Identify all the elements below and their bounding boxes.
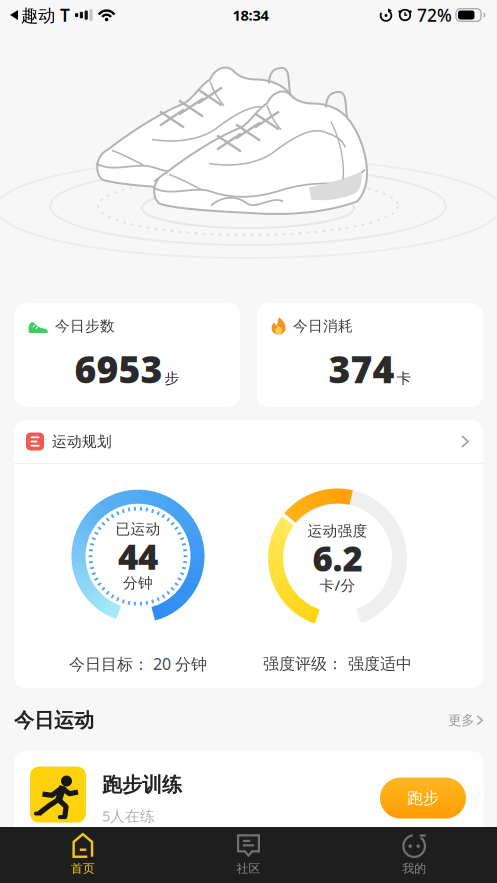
staticText: 首页 bbox=[71, 861, 95, 876]
staticText: 更多 bbox=[448, 712, 474, 728]
staticText: 卡 bbox=[396, 369, 411, 387]
staticText: 分钟 bbox=[123, 574, 153, 592]
button[interactable]: 更多 bbox=[448, 712, 483, 728]
staticText: 趣动 T bbox=[21, 3, 70, 26]
staticText: 今日目标： 20 分钟 bbox=[69, 653, 207, 674]
staticText: 44 bbox=[118, 533, 158, 579]
button[interactable]: 跑步训练 bbox=[14, 751, 483, 855]
staticText: 5人在练 bbox=[102, 806, 155, 826]
staticText: 今日运动 bbox=[14, 708, 94, 733]
staticText: 卡/分 bbox=[319, 575, 355, 595]
staticText: 72% bbox=[417, 3, 452, 26]
staticText: 18:34 bbox=[232, 5, 268, 25]
staticText: 今日步数 bbox=[55, 317, 115, 335]
staticText: 我的 bbox=[402, 861, 426, 876]
staticText: 运动规划 bbox=[52, 432, 112, 450]
staticText: 运动强度 bbox=[307, 522, 367, 540]
staticText: 6953 bbox=[74, 344, 162, 394]
button[interactable]: 首页 bbox=[0, 832, 166, 876]
staticText: 跑步训练 bbox=[102, 773, 182, 797]
staticText: 今日消耗 bbox=[293, 317, 353, 335]
button[interactable]: 运动规划 bbox=[14, 420, 483, 463]
button[interactable]: 跑步 bbox=[380, 778, 466, 819]
staticText: 6.2 bbox=[312, 535, 362, 581]
staticText: 跑步 bbox=[407, 788, 439, 808]
button[interactable]: 我的 bbox=[331, 832, 497, 876]
staticText: 已运动 bbox=[115, 520, 160, 538]
staticText: 374 bbox=[328, 344, 394, 394]
staticText: 步 bbox=[164, 369, 179, 387]
staticText: 强度评级： 强度适中 bbox=[263, 654, 412, 674]
staticText: 社区 bbox=[236, 861, 260, 876]
button[interactable]: 社区 bbox=[166, 832, 331, 876]
